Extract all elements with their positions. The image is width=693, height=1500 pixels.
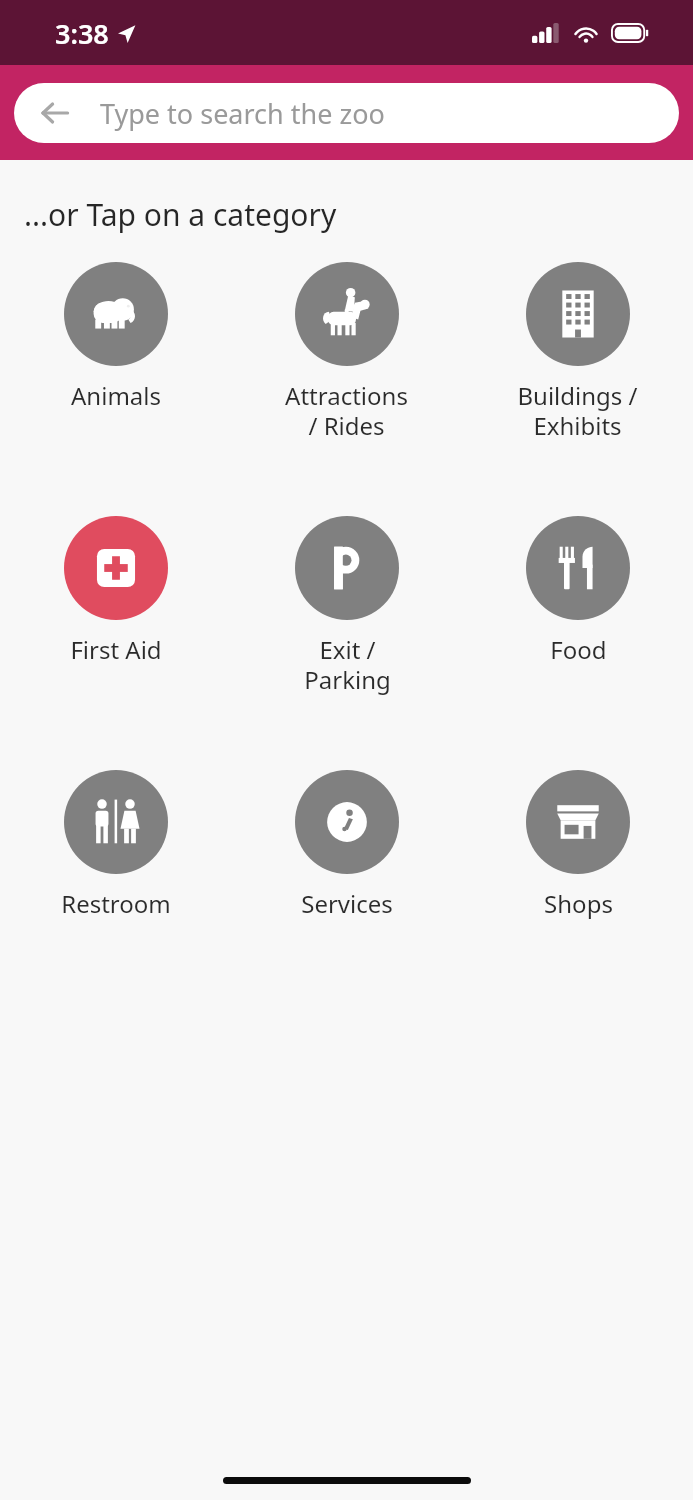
staticText: 3:38 [55,15,109,52]
staticText: Food [550,633,607,666]
staticText: Buildings / Exhibits [517,379,638,442]
button[interactable]: Attractions / Rides [281,262,412,442]
button[interactable]: Animals [60,262,172,412]
staticText: Restroom [61,887,171,920]
staticText: Shops [544,887,613,920]
staticText: First Aid [70,633,162,666]
staticText: Animals [71,379,161,412]
staticText: ...or Tap on a category [24,194,337,235]
staticText: Attractions / Rides [285,379,408,442]
button[interactable]: Shops [522,770,634,920]
button[interactable]: Restroom [57,770,175,920]
button[interactable]: Back [38,96,72,130]
staticText: Services [301,887,393,920]
button[interactable]: Food [522,516,634,666]
button[interactable]: Back [14,83,679,143]
button[interactable]: First Aid [60,516,172,666]
button[interactable]: Services [291,770,403,920]
staticText: Exit / Parking [304,633,391,696]
staticText: Type to search the zoo [100,95,385,132]
button[interactable]: Exit / Parking [291,516,403,696]
button[interactable]: Buildings / Exhibits [513,262,642,442]
